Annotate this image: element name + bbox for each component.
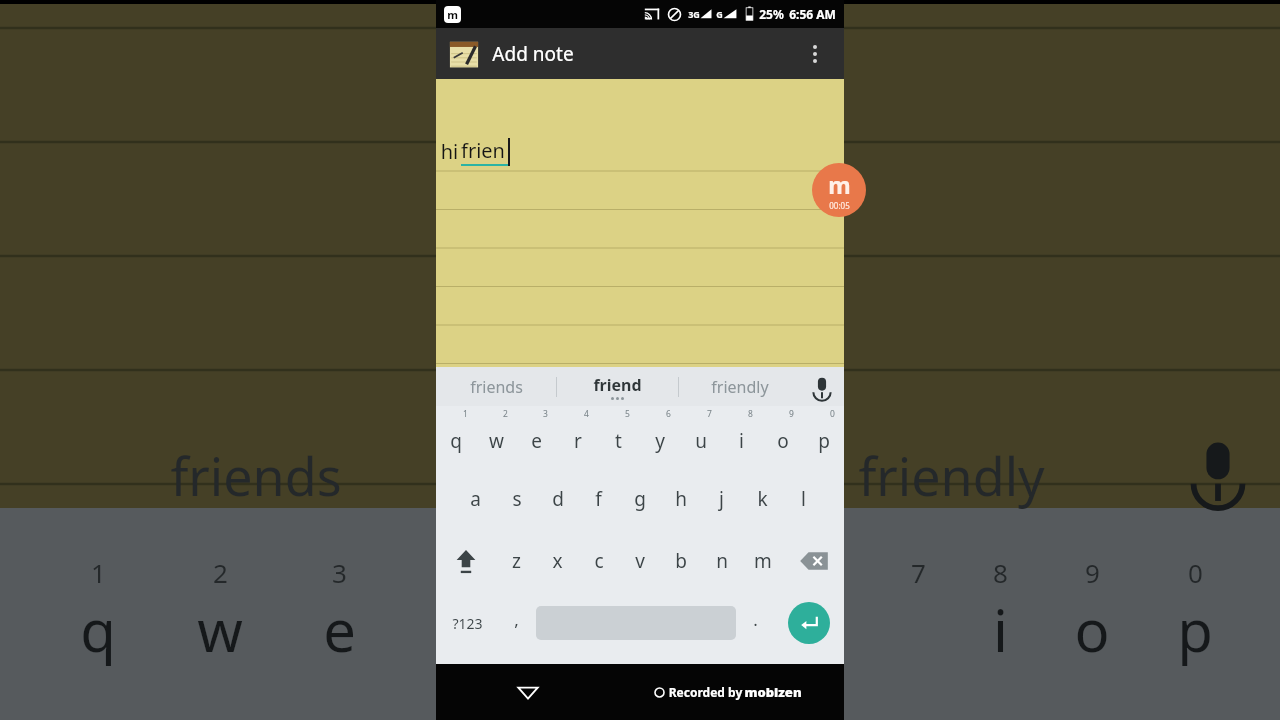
staticText: v <box>635 548 645 574</box>
staticText: 25% <box>759 6 784 22</box>
staticText: 2 <box>503 408 508 420</box>
button[interactable]: f <box>578 468 619 530</box>
staticText: h <box>675 486 687 512</box>
staticText: friends <box>470 376 523 398</box>
staticText: e <box>323 590 356 669</box>
button[interactable]: Mobizen recorder <box>812 163 866 217</box>
staticText: Recorded by <box>667 684 744 700</box>
staticText: f <box>595 486 602 512</box>
staticText: z <box>512 548 521 574</box>
button[interactable]: x <box>537 530 578 592</box>
button[interactable]: friends <box>436 367 556 406</box>
staticText: 2 <box>213 555 228 590</box>
button[interactable]: 6 <box>639 406 680 468</box>
staticText: 9 <box>789 408 794 420</box>
button[interactable]: k <box>742 468 783 530</box>
button[interactable]: , <box>499 592 534 654</box>
button[interactable]: j <box>701 468 742 530</box>
staticText: 5 <box>625 408 630 420</box>
staticText: x <box>552 548 563 574</box>
button[interactable]: More options <box>798 37 832 71</box>
button[interactable]: a <box>455 468 496 530</box>
button[interactable]: 7 <box>680 406 721 468</box>
staticText: 9 <box>1085 555 1100 590</box>
staticText: k <box>757 486 768 512</box>
button[interactable]: d <box>537 468 578 530</box>
staticText: 6 <box>666 408 671 420</box>
staticText: q <box>80 590 116 669</box>
button[interactable]: Enter <box>788 602 830 644</box>
staticText: m <box>754 548 772 574</box>
button[interactable]: b <box>660 530 701 592</box>
staticText: 3G <box>688 8 700 20</box>
button[interactable]: m <box>742 530 783 592</box>
staticText: frien <box>461 137 505 164</box>
button[interactable]: 4 <box>557 406 598 468</box>
button[interactable]: g <box>619 468 660 530</box>
staticText: mobizen <box>744 683 802 701</box>
staticText: friendly <box>711 376 769 398</box>
staticText: m <box>828 169 851 200</box>
staticText: y <box>655 428 665 454</box>
staticText: 8 <box>993 555 1008 590</box>
button[interactable]: c <box>578 530 619 592</box>
button[interactable]: n <box>701 530 742 592</box>
button[interactable]: friend <box>557 367 678 406</box>
staticText: , <box>514 608 519 631</box>
button[interactable]: friendly <box>679 367 800 406</box>
button[interactable]: 1 <box>436 406 476 468</box>
button[interactable]: 5 <box>598 406 639 468</box>
staticText: u <box>695 428 707 454</box>
staticText: t <box>615 428 622 454</box>
button[interactable]: Voice input <box>800 367 844 406</box>
staticText: 1 <box>463 408 468 420</box>
button[interactable]: s <box>496 468 537 530</box>
staticText: i <box>739 428 744 454</box>
staticText: Add note <box>492 41 574 67</box>
staticText: o <box>777 428 789 454</box>
button[interactable]: v <box>619 530 660 592</box>
staticText: 0 <box>830 408 835 420</box>
staticText: r <box>574 428 582 454</box>
staticText: 8 <box>748 408 753 420</box>
button[interactable]: l <box>783 468 824 530</box>
staticText: b <box>675 548 687 574</box>
staticText: e <box>531 428 542 454</box>
button[interactable]: 3 <box>516 406 557 468</box>
staticText: 0 <box>1188 555 1203 590</box>
staticText: c <box>594 548 604 574</box>
staticText: m <box>447 7 458 22</box>
staticText: 1 <box>91 555 106 590</box>
staticText: s <box>512 486 522 512</box>
button[interactable]: Shift <box>436 530 496 592</box>
staticText: d <box>552 486 564 512</box>
button[interactable]: . <box>738 592 773 654</box>
staticText: p <box>818 428 830 454</box>
button[interactable]: z <box>496 530 537 592</box>
button[interactable]: 0 <box>803 406 844 468</box>
staticText: g <box>634 486 646 512</box>
button[interactable]: 2 <box>476 406 516 468</box>
staticText: G <box>716 8 723 20</box>
staticText: j <box>719 486 724 512</box>
staticText: o <box>1074 590 1110 669</box>
staticText: 7 <box>707 408 712 420</box>
button[interactable]: Backspace <box>783 530 844 592</box>
staticText: ?123 <box>452 614 483 633</box>
button[interactable]: 8 <box>721 406 762 468</box>
staticText: i <box>993 590 1008 669</box>
staticText: 00:05 <box>829 200 850 211</box>
button[interactable]: 9 <box>762 406 803 468</box>
staticText: q <box>450 428 462 454</box>
staticText: w <box>489 428 504 454</box>
button[interactable]: h <box>660 468 701 530</box>
button[interactable]: Hide keyboard <box>508 672 548 712</box>
button[interactable]: ?123 <box>436 592 499 654</box>
staticText: hi <box>438 138 461 165</box>
staticText: 3 <box>543 408 548 420</box>
staticText: a <box>470 486 481 512</box>
staticText: w <box>197 590 243 669</box>
staticText: . <box>753 608 758 631</box>
button[interactable]: hi <box>436 79 844 367</box>
